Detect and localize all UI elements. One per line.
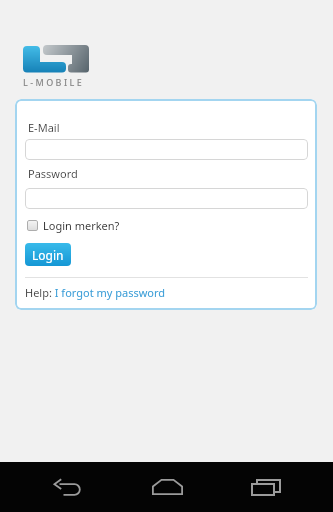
staticText: L-MOBILE (23, 76, 85, 88)
button[interactable]: Help: I forgot my password (25, 285, 166, 300)
button[interactable]: Login (25, 243, 71, 266)
button[interactable] (25, 188, 308, 209)
button[interactable] (34, 462, 100, 512)
staticText: Password (28, 166, 78, 181)
button[interactable] (233, 462, 299, 512)
button[interactable] (134, 462, 200, 512)
staticText: E-Mail (28, 120, 60, 135)
staticText: Login (32, 247, 64, 263)
button[interactable] (25, 139, 308, 160)
button[interactable]: Login merken? (27, 218, 120, 233)
staticText: Help: I forgot my password (25, 285, 166, 300)
staticText: Login merken? (43, 218, 120, 233)
